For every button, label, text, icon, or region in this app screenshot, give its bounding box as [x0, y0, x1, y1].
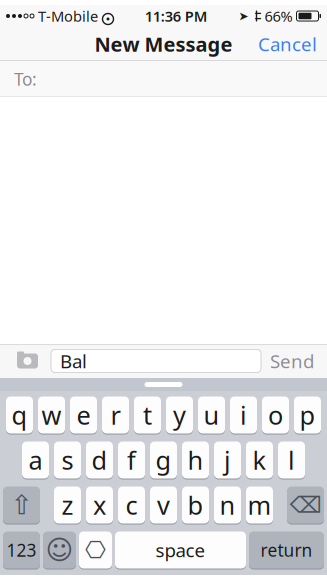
staticText: a — [28, 443, 42, 477]
button[interactable]: Shift — [3, 486, 40, 524]
staticText: y — [173, 398, 186, 432]
button[interactable]: t — [134, 396, 161, 434]
button[interactable]: u — [198, 396, 225, 434]
staticText: t — [143, 398, 152, 432]
button[interactable]: c — [118, 486, 145, 524]
staticText: r — [110, 398, 120, 432]
staticText: ⌫ — [289, 492, 321, 518]
staticText: q — [11, 398, 27, 432]
button[interactable]: r — [102, 396, 129, 434]
staticText: l — [288, 443, 295, 477]
staticText: c — [125, 488, 137, 522]
staticText: k — [252, 443, 266, 477]
button[interactable]: Delete — [287, 486, 324, 524]
button[interactable]: v — [150, 486, 177, 524]
button[interactable]: f — [118, 441, 145, 479]
staticText: ➤ — [238, 9, 248, 23]
button[interactable]: w — [38, 396, 65, 434]
button[interactable]: z — [54, 486, 81, 524]
staticText: v — [157, 488, 170, 522]
staticText: ⎔ — [85, 536, 106, 564]
button[interactable]: k — [246, 441, 273, 479]
button[interactable]: Dictate — [79, 531, 112, 569]
staticText: s — [61, 443, 73, 477]
button[interactable]: b — [182, 486, 209, 524]
staticText: ☺ — [45, 535, 73, 565]
staticText: f — [127, 443, 136, 477]
staticText: 66% — [264, 6, 292, 26]
staticText: w — [41, 398, 61, 432]
staticText: u — [203, 398, 219, 432]
staticText: n — [219, 488, 235, 522]
staticText: ⇧ — [10, 490, 32, 520]
staticText: 11:36 PM — [145, 6, 208, 26]
button[interactable]: j — [214, 441, 241, 479]
staticText: g — [155, 443, 171, 477]
staticText: Cancel — [258, 32, 317, 56]
button[interactable]: return — [249, 531, 324, 569]
button[interactable]: e — [70, 396, 97, 434]
button[interactable]: a — [22, 441, 49, 479]
button[interactable]: space — [115, 531, 246, 569]
button[interactable]: 123 — [3, 531, 40, 569]
staticText: New Message — [94, 31, 232, 57]
button[interactable]: To: — [0, 61, 327, 97]
staticText: space — [155, 538, 205, 562]
button[interactable]: Cancel — [248, 25, 327, 63]
staticText: d — [91, 443, 107, 477]
staticText: h — [187, 443, 203, 477]
button[interactable]: Bal — [51, 349, 261, 372]
staticText: To: — [14, 67, 37, 90]
button[interactable]: p — [294, 396, 321, 434]
staticText: z — [61, 488, 73, 522]
button[interactable]: q — [6, 396, 33, 434]
button[interactable]: l — [278, 441, 305, 479]
button[interactable]: Emoji — [43, 531, 76, 569]
button[interactable]: Take photo or video — [13, 347, 42, 374]
button[interactable]: d — [86, 441, 113, 479]
staticText: i — [240, 398, 247, 432]
button[interactable]: x — [86, 486, 113, 524]
button[interactable]: g — [150, 441, 177, 479]
button[interactable]: n — [214, 486, 241, 524]
button[interactable]: s — [54, 441, 81, 479]
staticText: p — [299, 398, 315, 432]
staticText: Send — [270, 349, 314, 373]
staticText: x — [93, 488, 106, 522]
staticText: T-Mobile — [38, 6, 98, 26]
staticText: b — [187, 488, 203, 522]
button[interactable]: y — [166, 396, 193, 434]
staticText: return — [260, 538, 312, 561]
button[interactable]: Send — [270, 344, 314, 378]
button[interactable]: o — [262, 396, 289, 434]
staticText: Bal — [60, 349, 87, 373]
button[interactable]: i — [230, 396, 257, 434]
button[interactable]: h — [182, 441, 209, 479]
staticText: o — [268, 398, 283, 432]
staticText: 123 — [6, 538, 36, 561]
button[interactable]: m — [246, 486, 273, 524]
staticText: j — [224, 443, 231, 477]
staticText: e — [76, 398, 90, 432]
staticText: m — [247, 488, 271, 522]
